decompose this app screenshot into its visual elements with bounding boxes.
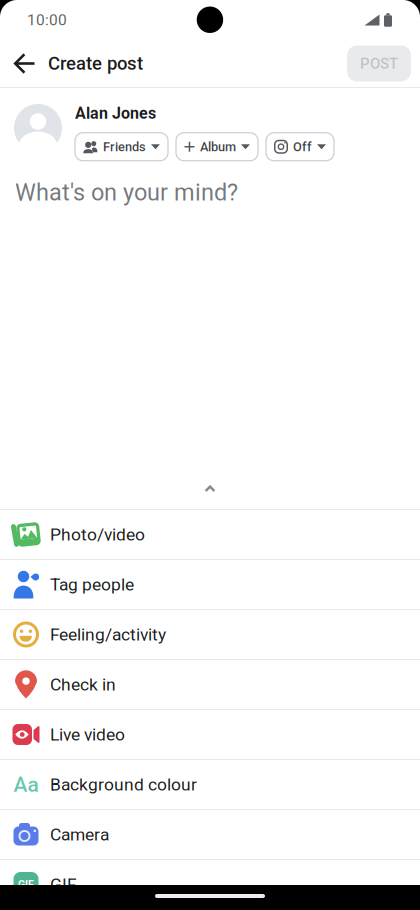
- button[interactable]: Off: [266, 133, 334, 161]
- button[interactable]: Collapse options: [204, 485, 215, 509]
- staticText: Live video: [50, 724, 125, 745]
- button[interactable]: POST: [347, 45, 411, 81]
- staticText: Friends: [103, 139, 146, 154]
- staticText: Background colour: [50, 774, 197, 795]
- button[interactable]: Tag people: [0, 559, 420, 609]
- staticText: Album: [200, 139, 236, 154]
- staticText: 10:00: [27, 11, 67, 29]
- button[interactable]: GIF: [0, 859, 420, 909]
- staticText: Check in: [50, 674, 116, 695]
- staticText: Feeling/activity: [50, 624, 166, 645]
- button[interactable]: Profile photo: [14, 104, 62, 152]
- staticText: GIF: [50, 874, 77, 895]
- button[interactable]: Friends: [75, 133, 168, 161]
- staticText: GIF: [18, 878, 34, 891]
- button[interactable]: Check in: [0, 659, 420, 709]
- staticText: Tag people: [50, 574, 134, 595]
- button[interactable]: Photo/video: [0, 509, 420, 559]
- staticText: Alan Jones: [75, 104, 156, 123]
- staticText: Aa: [13, 772, 38, 797]
- staticText: Photo/video: [50, 524, 145, 545]
- button[interactable]: Album: [176, 133, 258, 161]
- staticText: Camera: [50, 824, 109, 845]
- staticText: Off: [293, 139, 312, 154]
- button[interactable]: Camera: [0, 809, 420, 859]
- staticText: POST: [360, 55, 398, 72]
- button[interactable]: Back: [0, 53, 48, 73]
- staticText: Create post: [48, 53, 143, 74]
- staticText: What's on your mind?: [15, 179, 238, 206]
- button[interactable]: Feeling/activity: [0, 609, 420, 659]
- button[interactable]: Live video: [0, 709, 420, 759]
- button[interactable]: Aa: [0, 759, 420, 809]
